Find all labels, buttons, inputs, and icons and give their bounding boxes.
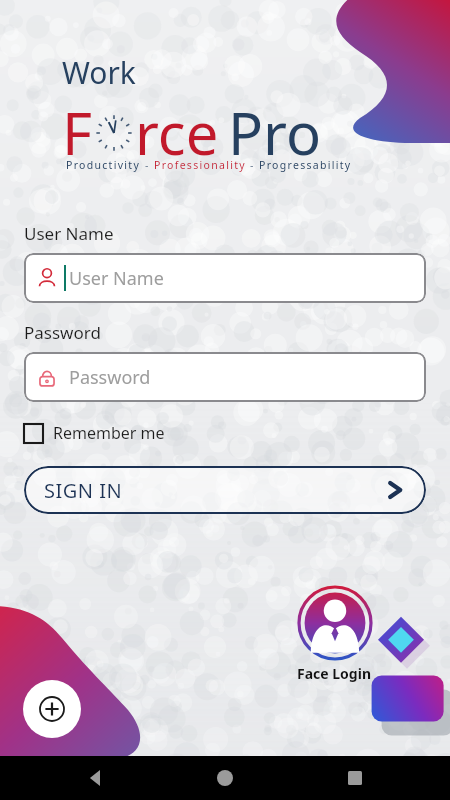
staticText: Professionality xyxy=(154,158,246,172)
staticText: User Name xyxy=(69,266,164,291)
button[interactable]: Password xyxy=(24,352,426,402)
staticText: Remember me xyxy=(53,422,165,444)
staticText: Password xyxy=(69,365,151,390)
button[interactable]: Back xyxy=(88,770,104,786)
staticText: Work xyxy=(62,52,136,93)
button[interactable]: Face Login xyxy=(297,586,372,683)
staticText: Pro xyxy=(228,93,321,172)
staticText: - xyxy=(141,158,154,172)
staticText: rce xyxy=(135,93,219,172)
button[interactable]: User Name xyxy=(24,253,426,303)
staticText: F xyxy=(62,93,93,172)
button[interactable]: Recents xyxy=(348,771,362,785)
staticText: Face Login xyxy=(297,664,372,683)
button[interactable]: Remember me xyxy=(24,422,165,444)
button[interactable]: Home xyxy=(217,770,233,786)
staticText: SIGN IN xyxy=(44,477,123,504)
staticText: Productivity xyxy=(66,158,141,172)
staticText: - xyxy=(246,158,259,172)
staticText: Progressability xyxy=(259,158,352,172)
button[interactable]: Add xyxy=(23,680,81,738)
staticText: Password xyxy=(24,321,101,344)
staticText: User Name xyxy=(24,222,114,245)
button[interactable]: SIGN IN xyxy=(24,466,426,514)
